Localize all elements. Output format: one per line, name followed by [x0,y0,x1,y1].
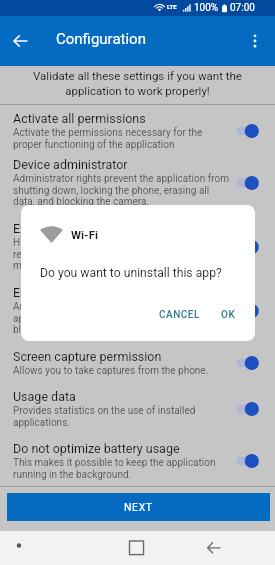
staticText: 07:00 [230,2,255,14]
staticText: Activate all permissions [13,111,146,126]
staticText: Validate all these settings if you want … [8,69,267,97]
staticText: Activate the permissions necessary for t… [13,127,203,150]
staticText: Screen capture permission [13,349,162,364]
button[interactable]: Device administrator [0,157,275,208]
staticText: OK [221,309,236,321]
staticText: CANCEL [159,309,200,321]
staticText: Configuration [56,30,146,48]
staticText: Authorize the application to work withou… [13,301,195,335]
button[interactable]: Usage data [0,389,275,429]
staticText: Administrator rights prevent the applica… [13,173,229,207]
staticText: This makes it possible to keep the appli… [13,457,216,480]
button[interactable]: Navigate up [9,29,33,53]
staticText: 100% [194,2,219,14]
button[interactable]: Back [203,536,226,559]
button[interactable]: Do not optimize battery usage [0,441,275,481]
staticText: Device administrator [13,157,128,172]
staticText: Provides statistics on the use of instal… [13,405,196,428]
staticText: Do you want to uninstall this app? [40,266,222,280]
button[interactable]: Exact alarms [0,221,275,272]
button[interactable]: Screen capture permission [0,349,275,377]
staticText: Do not optimize battery usage [13,441,180,456]
button[interactable]: OK [215,303,242,327]
staticText: Exact alarms [13,221,86,236]
staticText: LTE [167,3,177,10]
button[interactable]: NEXT [7,493,270,521]
button[interactable]: Activate all permissions [0,111,275,151]
staticText: Having access to exact alarms allows to … [13,237,192,271]
staticText: Usage data [13,389,76,404]
button[interactable]: Recent apps [125,536,148,559]
staticText: Wi-Fi [71,228,98,241]
button[interactable]: CANCEL [153,303,206,327]
staticText: Allows you to take captures from the pho… [13,365,209,377]
button[interactable]: Energy saving [0,285,275,336]
staticText: Energy saving [13,285,90,300]
staticText: NEXT [124,501,153,513]
button[interactable]: More options [243,29,267,53]
